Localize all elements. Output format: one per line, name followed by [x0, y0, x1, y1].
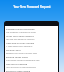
staticText: A new device just signed in: [6, 45, 33, 48]
button[interactable]: Two-factor enabled: [6, 63, 57, 70]
staticText: Your New Password Request: [0, 5, 64, 9]
staticText: Two-factor enabled: [6, 63, 28, 66]
staticText: We received a request to reset: [6, 31, 36, 34]
staticText: Tap the link below to confirm: [6, 38, 35, 41]
button[interactable]: Security alert: [6, 49, 57, 56]
button[interactable]: Password reset requested: [6, 28, 57, 35]
staticText: New sign-in from Chrome: [6, 42, 35, 45]
staticText: Backup codes ready: [6, 56, 28, 59]
staticText: Verify your email address: [6, 35, 34, 38]
staticText: Your account is now protected: [6, 66, 36, 69]
staticText: Save these codes somewhere safe: [6, 59, 40, 62]
button[interactable]: Recovery email added: [6, 70, 57, 72]
staticText: Security alert: [6, 49, 21, 52]
button[interactable]: New sign-in from Chrome: [6, 42, 57, 49]
staticText: Recovery email added: [6, 70, 31, 72]
button[interactable]: Backup codes ready: [6, 56, 57, 63]
button[interactable]: Verify your email address: [6, 35, 57, 42]
staticText: Password reset requested: [6, 28, 35, 31]
staticText: Review your recent activity now: [6, 52, 37, 55]
